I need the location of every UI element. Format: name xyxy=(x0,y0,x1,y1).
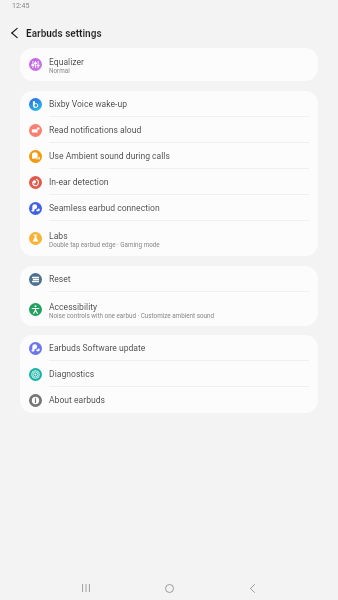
button[interactable]: Equalizer xyxy=(20,48,318,81)
staticText: Double tap earbud edge · Gaming mode xyxy=(49,241,160,248)
staticText: Earbuds Software update xyxy=(49,343,146,353)
staticText: About earbuds xyxy=(49,395,106,405)
staticText: Equalizer xyxy=(49,57,84,67)
staticText: Noise controls with one earbud · Customi… xyxy=(49,312,214,319)
button[interactable]: Recent apps xyxy=(73,576,99,600)
button[interactable]: Back xyxy=(239,576,265,600)
staticText: Earbuds settings xyxy=(26,28,102,40)
staticText: Read notifications aloud xyxy=(49,125,142,135)
button[interactable]: Read notifications aloud xyxy=(20,117,318,143)
staticText: Seamless earbud connection xyxy=(49,203,160,213)
staticText: Use Ambient sound during calls xyxy=(49,151,170,161)
staticText: Accessibility xyxy=(49,302,98,312)
button[interactable]: Earbuds Software update xyxy=(20,335,318,361)
button[interactable]: Navigate up xyxy=(0,20,26,48)
button[interactable]: Accessibility xyxy=(20,292,318,326)
button[interactable]: About earbuds xyxy=(20,387,318,413)
staticText: 12:45 xyxy=(12,2,30,10)
staticText: Bixby Voice wake-up xyxy=(49,99,128,109)
staticText: Reset xyxy=(49,274,71,284)
staticText: In-ear detection xyxy=(49,177,109,187)
staticText: Normal xyxy=(49,67,70,74)
staticText: Labs xyxy=(49,231,68,241)
button[interactable]: Home xyxy=(156,576,182,600)
button[interactable]: Diagnostics xyxy=(20,361,318,387)
button[interactable]: In-ear detection xyxy=(20,169,318,195)
button[interactable]: Reset xyxy=(20,266,318,292)
button[interactable]: Labs xyxy=(20,221,318,256)
button[interactable]: Bixby Voice wake-up xyxy=(20,91,318,117)
button[interactable]: Use Ambient sound during calls xyxy=(20,143,318,169)
button[interactable]: Seamless earbud connection xyxy=(20,195,318,221)
staticText: Diagnostics xyxy=(49,369,95,379)
